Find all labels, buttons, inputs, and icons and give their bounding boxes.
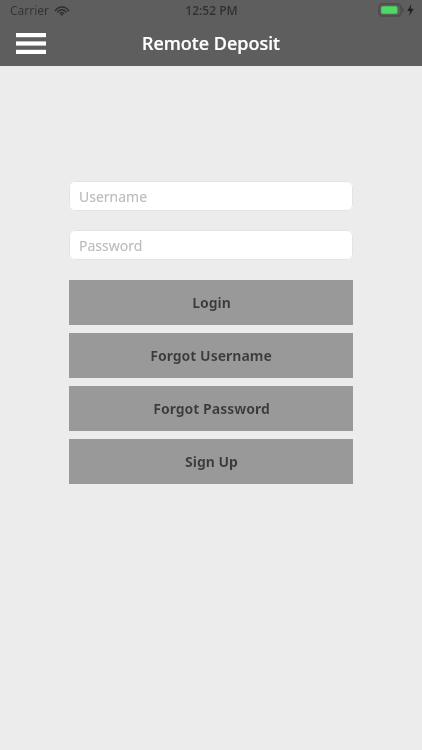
button[interactable]: Forgot Username xyxy=(69,333,353,378)
button[interactable]: Password xyxy=(69,230,353,260)
staticText: Password xyxy=(79,236,143,255)
staticText: Username xyxy=(79,187,148,206)
button[interactable]: Forgot Password xyxy=(69,386,353,431)
staticText: Sign Up xyxy=(185,452,238,471)
button[interactable]: Open navigation menu xyxy=(10,23,52,63)
button[interactable]: Login xyxy=(69,280,353,325)
staticText: Carrier xyxy=(10,2,50,18)
staticText: Remote Deposit xyxy=(142,31,280,56)
staticText: Login xyxy=(192,293,231,312)
button[interactable]: Sign Up xyxy=(69,439,353,484)
button[interactable]: Username xyxy=(69,181,353,211)
staticText: Forgot Username xyxy=(150,346,272,365)
staticText: 12:52 PM xyxy=(185,2,238,18)
staticText: Forgot Password xyxy=(153,399,270,418)
